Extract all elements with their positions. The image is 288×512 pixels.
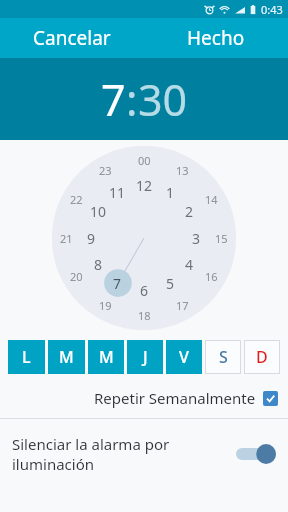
staticText: 18 <box>138 308 151 323</box>
staticText: Cancelar <box>33 25 111 51</box>
staticText: 8 <box>94 255 103 274</box>
staticText: Hecho <box>187 25 245 51</box>
button[interactable]: 30 <box>138 70 188 129</box>
staticText: 12 <box>136 176 153 195</box>
staticText: Silenciar la alarma por iluminación <box>12 434 228 474</box>
button[interactable]: Cancelar <box>0 18 144 58</box>
button[interactable]: S <box>205 340 241 374</box>
staticText: 22 <box>70 192 83 207</box>
button[interactable]: Silenciar la alarma por iluminación <box>0 419 288 489</box>
staticText: V <box>179 346 189 368</box>
staticText: 15 <box>215 231 228 246</box>
button[interactable]: Repetir Semanalmente <box>0 378 288 418</box>
staticText: 11 <box>109 183 126 202</box>
staticText: 16 <box>205 269 218 284</box>
staticText: 7 <box>113 274 122 293</box>
staticText: 13 <box>176 163 189 178</box>
staticText: M <box>99 346 114 368</box>
staticText: 21 <box>60 231 73 246</box>
staticText: 4 <box>185 255 194 274</box>
staticText: 00 <box>138 153 151 168</box>
button[interactable]: V <box>166 340 202 374</box>
staticText: 20 <box>70 269 83 284</box>
button[interactable]: Hecho <box>144 18 288 58</box>
staticText: 9 <box>87 229 96 248</box>
staticText: 1 <box>166 183 175 202</box>
staticText: 17 <box>176 298 189 313</box>
staticText: 6 <box>140 281 149 300</box>
staticText: Repetir Semanalmente <box>94 388 256 408</box>
staticText: J <box>143 346 148 368</box>
staticText: : <box>126 70 138 129</box>
staticText: 10 <box>90 202 107 221</box>
staticText: 5 <box>166 274 175 293</box>
button[interactable]: M <box>48 340 85 374</box>
staticText: 3 <box>192 229 201 248</box>
other: Silenciar la alarma por iluminación <box>236 443 276 465</box>
staticText: M <box>59 346 74 368</box>
button[interactable]: M <box>88 340 124 374</box>
staticText: S <box>219 346 228 368</box>
staticText: 7 <box>101 70 126 129</box>
staticText: 0:43 <box>261 2 283 17</box>
button[interactable]: L <box>8 340 45 374</box>
staticText: D <box>256 346 268 368</box>
staticText: 2 <box>185 202 194 221</box>
button[interactable]: 7 <box>101 70 126 129</box>
staticText: 23 <box>99 163 112 178</box>
staticText: L <box>22 346 31 368</box>
button[interactable]: D <box>244 340 280 374</box>
staticText: 14 <box>205 192 218 207</box>
staticText: 30 <box>138 70 188 129</box>
button[interactable]: 12 <box>0 140 288 336</box>
staticText: 19 <box>99 298 112 313</box>
button[interactable]: J <box>127 340 163 374</box>
